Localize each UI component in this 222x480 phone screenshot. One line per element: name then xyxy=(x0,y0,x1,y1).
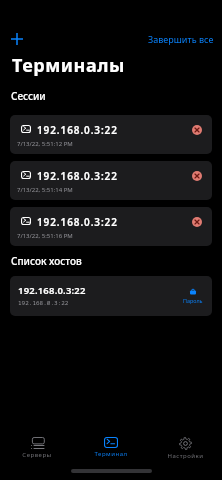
button[interactable]: Пароль xyxy=(183,289,203,304)
button[interactable]: 192.168.0.3:22 xyxy=(10,161,212,200)
staticText: Терминал xyxy=(94,450,128,458)
button[interactable]: 192.168.0.3:22 xyxy=(10,276,212,316)
staticText: Настройки xyxy=(167,452,204,460)
button[interactable]: Терминал xyxy=(74,433,148,465)
button[interactable]: Настройки xyxy=(148,433,222,465)
staticText: Список хостов xyxy=(11,254,82,268)
staticText: Серверы xyxy=(22,451,52,459)
button[interactable]: Завершить все xyxy=(144,31,218,47)
staticText: 7/13/22, 5:51:12 PM xyxy=(17,140,73,148)
staticText: Сессии xyxy=(11,89,46,103)
staticText: 192.168.0.3:22 xyxy=(37,215,118,229)
staticText: Терминалы xyxy=(12,53,125,78)
button[interactable]: Close session xyxy=(192,217,202,227)
button[interactable]: Серверы xyxy=(0,433,74,465)
button[interactable]: Close session xyxy=(192,171,202,181)
staticText: 192.168.0.3:22 xyxy=(37,123,118,137)
staticText: Завершить все xyxy=(148,33,214,45)
staticText: 7/13/22, 5:51:14 PM xyxy=(17,186,73,194)
button[interactable]: 192.168.0.3:22 xyxy=(10,207,212,246)
staticText: Пароль xyxy=(183,297,203,304)
button[interactable]: New terminal xyxy=(7,29,27,49)
staticText: 192.168.0.3:22 xyxy=(18,299,69,307)
button[interactable]: Close session xyxy=(192,125,202,135)
staticText: 7/13/22, 5:51:16 PM xyxy=(17,232,73,240)
staticText: 192.168.0.3:22 xyxy=(37,169,118,183)
button[interactable]: 192.168.0.3:22 xyxy=(10,115,212,154)
staticText: 192.168.0.3:22 xyxy=(18,284,86,297)
